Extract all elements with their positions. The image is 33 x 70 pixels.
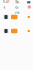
button[interactable]: Profile: [28, 5, 31, 9]
button[interactable]: [0, 10, 33, 24]
button[interactable]: Back: [2, 4, 7, 9]
staticText: ‹: [3, 3, 5, 11]
staticText: ▮▮▮: [27, 0, 30, 3]
staticText: 9:41: [3, 0, 10, 4]
button[interactable]: [0, 24, 33, 38]
staticText: Store: [15, 0, 19, 15]
